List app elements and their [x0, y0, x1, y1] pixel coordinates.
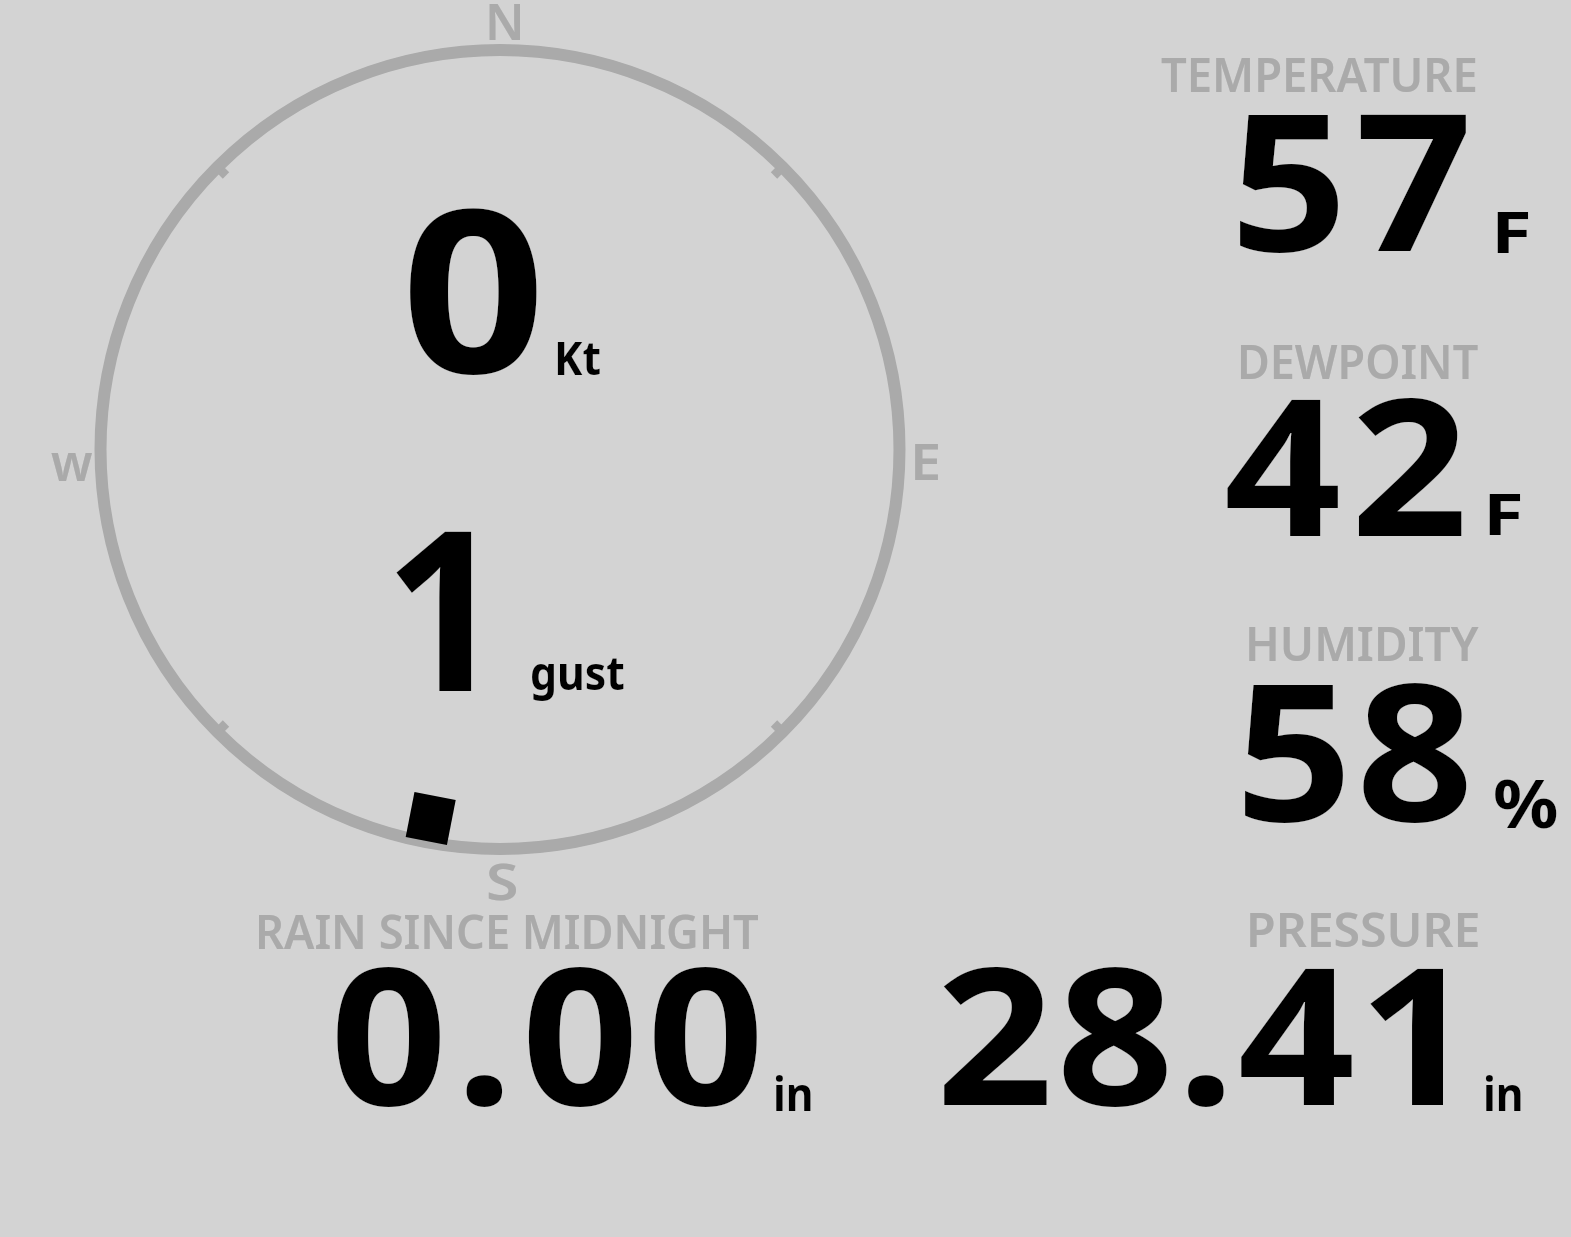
- staticText: gust: [530, 640, 625, 704]
- staticText: RAIN SINCE MIDNIGHT: [255, 900, 759, 963]
- staticText: 57: [1230, 48, 1482, 307]
- staticText: %: [1493, 757, 1559, 847]
- staticText: Kt: [554, 325, 601, 389]
- staticText: F: [1483, 473, 1524, 552]
- staticText: 58: [1235, 618, 1478, 877]
- staticText: TEMPERATURE: [1161, 43, 1478, 106]
- staticText: 42: [1224, 333, 1478, 592]
- button[interactable]: Wind speed and direction: [100, 50, 900, 850]
- staticText: w: [51, 428, 93, 496]
- button[interactable]: Rain since midnight 0.00 in: [250, 895, 780, 1120]
- button[interactable]: Pressure 28.41 in: [930, 890, 1530, 1120]
- staticText: E: [910, 427, 941, 495]
- staticText: N: [485, 0, 525, 55]
- staticText: 0.00: [330, 902, 773, 1161]
- button[interactable]: Humidity 58 percent: [1150, 605, 1560, 835]
- button[interactable]: Dewpoint 42 F: [1150, 325, 1560, 550]
- staticText: in: [773, 1061, 814, 1125]
- staticText: HUMIDITY: [1245, 612, 1479, 675]
- staticText: 28.41: [936, 902, 1479, 1161]
- staticText: 1: [384, 454, 505, 756]
- staticText: PRESSURE: [1246, 898, 1481, 961]
- staticText: in: [1483, 1061, 1524, 1125]
- staticText: S: [486, 847, 519, 915]
- staticText: 0: [401, 131, 547, 439]
- button[interactable]: Temperature 57 F: [1150, 40, 1560, 270]
- staticText: F: [1491, 191, 1532, 270]
- staticText: DEWPOINT: [1237, 330, 1479, 393]
